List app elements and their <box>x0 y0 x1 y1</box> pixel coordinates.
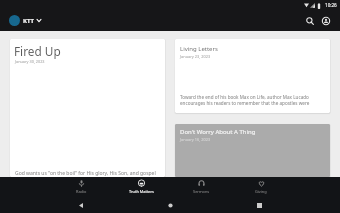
button[interactable]: Recents <box>251 197 267 213</box>
button[interactable]: Sermons <box>171 177 231 197</box>
button[interactable]: Truth Matters <box>111 177 171 197</box>
button[interactable]: Radio <box>51 177 111 197</box>
button[interactable]: Back <box>73 197 89 213</box>
staticText: Fired Up <box>14 43 61 59</box>
staticText: Living Letters <box>180 45 218 53</box>
button[interactable]: Don't Worry About A Thing <box>175 124 330 177</box>
staticText: Giving <box>255 189 267 194</box>
staticText: Radio <box>76 189 87 194</box>
button[interactable]: KTT <box>9 11 41 30</box>
staticText: January 30, 2023 <box>15 59 45 64</box>
staticText: January 16, 2023 <box>180 137 211 142</box>
button[interactable]: Giving <box>231 177 291 197</box>
button[interactable]: Home <box>162 197 178 213</box>
button[interactable]: Fired Up <box>10 39 165 177</box>
staticText: January 23, 2023 <box>180 54 211 59</box>
staticText: Truth Matters <box>129 189 154 194</box>
staticText: God wants us "on the boil" for His glory… <box>15 170 156 177</box>
button[interactable]: Search <box>301 11 319 30</box>
staticText: Toward the end of his book Max on Life, … <box>180 94 325 106</box>
staticText: Don't Worry About A Thing <box>180 128 256 136</box>
staticText: 10:26 <box>325 2 337 8</box>
button[interactable]: Account <box>317 11 335 30</box>
button[interactable]: Living Letters <box>175 39 330 113</box>
staticText: Sermons <box>193 189 210 194</box>
staticText: KTT <box>23 17 35 25</box>
